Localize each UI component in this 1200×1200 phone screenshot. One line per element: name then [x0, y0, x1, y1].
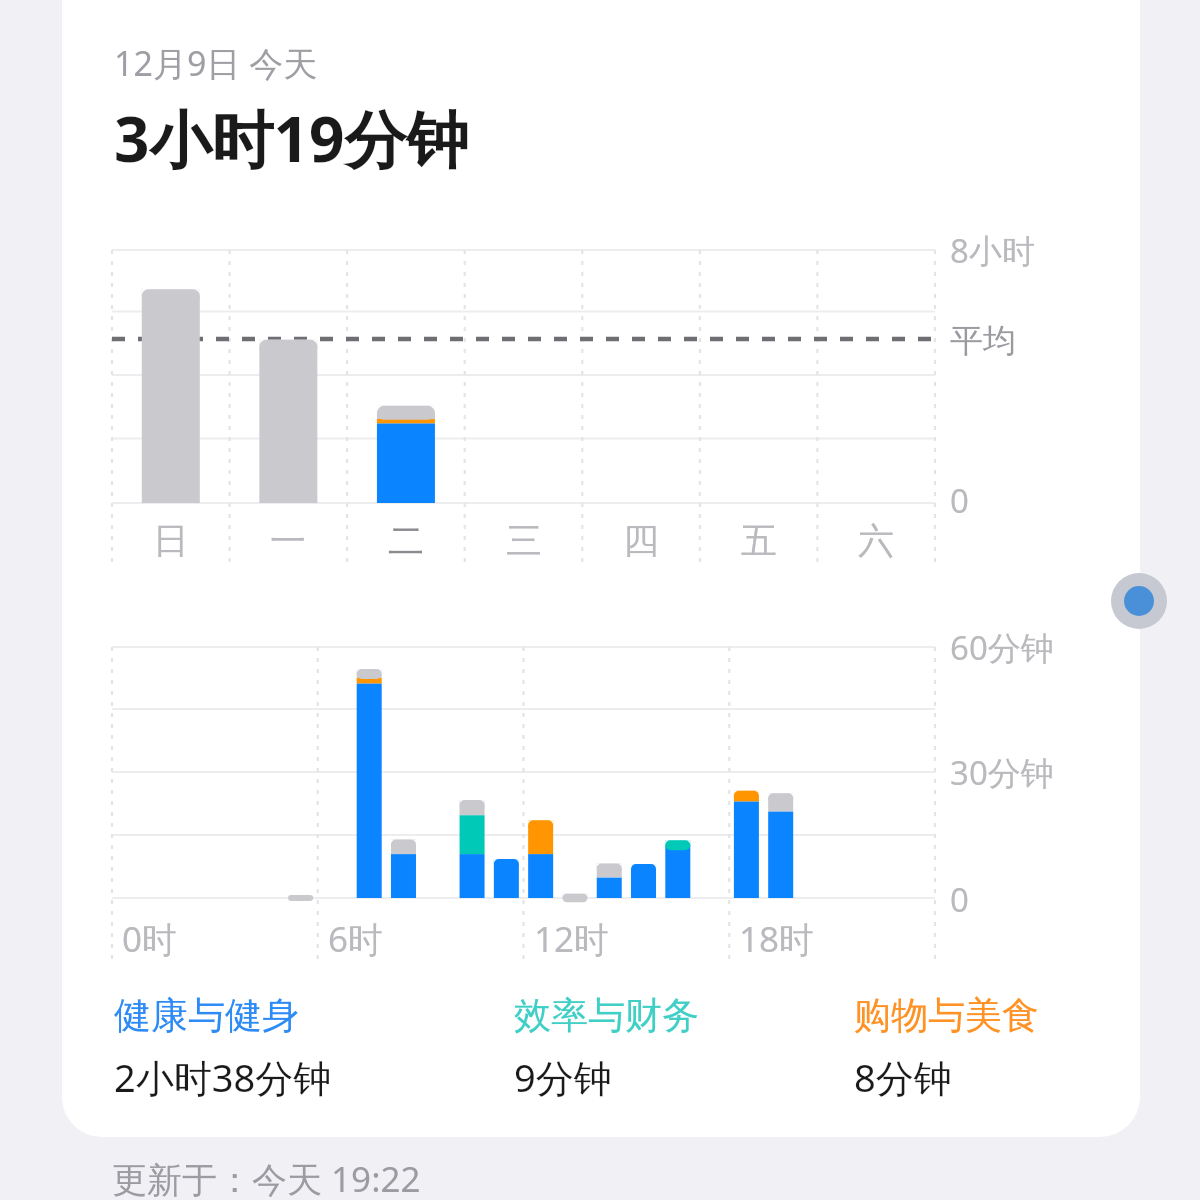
staticText: 二 [384, 518, 428, 563]
button[interactable] [62, 0, 1140, 1137]
button[interactable]: 健康与健身 [114, 992, 514, 1103]
staticText: 0时 [122, 915, 178, 963]
staticText: 12时 [534, 915, 610, 963]
staticText: 日 [149, 518, 193, 563]
button[interactable]: 效率与财务 [514, 992, 854, 1103]
staticText: 效率与财务 [514, 992, 699, 1039]
staticText: 一 [266, 518, 310, 563]
staticText: 12月9日 今天 [114, 40, 318, 86]
button[interactable]: 购物与美食 [854, 992, 1114, 1103]
staticText: 8小时 [950, 228, 1035, 273]
staticText: 购物与美食 [854, 992, 1039, 1039]
staticText: 更新于：今天 19:22 [112, 1155, 421, 1200]
staticText: 30分钟 [950, 750, 1054, 795]
staticText: 三 [502, 518, 546, 563]
staticText: 60分钟 [950, 625, 1054, 670]
staticText: 0 [950, 877, 969, 922]
staticText: 五 [737, 518, 781, 563]
staticText: 8分钟 [854, 1051, 952, 1103]
staticText: 平均 [950, 320, 1016, 362]
staticText: 6时 [328, 915, 384, 963]
staticText: 健康与健身 [114, 992, 299, 1039]
staticText: 六 [854, 518, 898, 563]
staticText: 9分钟 [514, 1051, 612, 1103]
staticText: 18时 [739, 915, 815, 963]
staticText: 0 [950, 478, 969, 523]
staticText: 2小时38分钟 [114, 1051, 332, 1103]
staticText: 四 [619, 518, 663, 563]
staticText: 3小时19分钟 [114, 96, 469, 181]
